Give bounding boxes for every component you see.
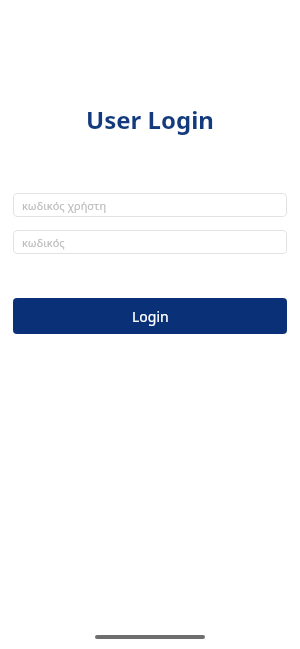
button[interactable]: Login — [13, 298, 287, 334]
button[interactable]: κωδικός — [13, 230, 287, 254]
staticText: User Login — [13, 103, 287, 136]
staticText: κωδικός χρήστη — [22, 198, 107, 213]
staticText: κωδικός — [22, 235, 65, 250]
button[interactable]: κωδικός χρήστη — [13, 193, 287, 217]
staticText: Login — [132, 307, 169, 326]
other: Home indicator — [95, 635, 205, 639]
